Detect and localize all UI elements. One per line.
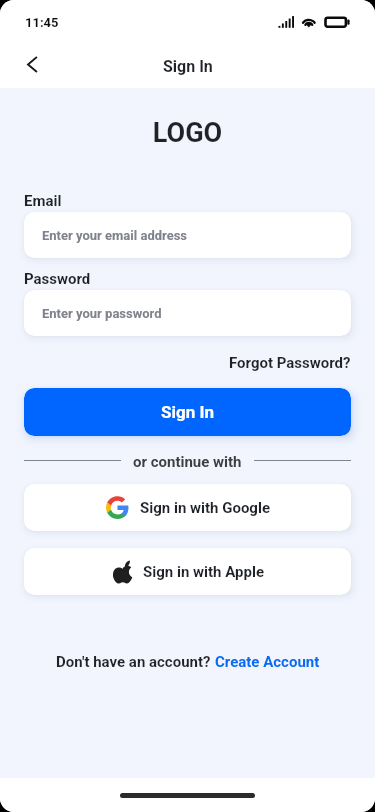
staticText: Email bbox=[24, 192, 62, 210]
staticText: Password bbox=[24, 270, 91, 288]
staticText: Enter your email address bbox=[42, 228, 188, 243]
button[interactable]: Back bbox=[12, 44, 52, 84]
button[interactable]: Sign In bbox=[24, 388, 351, 436]
button[interactable]: Enter your password bbox=[24, 290, 351, 336]
staticText: Enter your password bbox=[42, 306, 162, 321]
button[interactable]: Forgot Password? bbox=[229, 354, 351, 372]
staticText: 11:45 bbox=[25, 15, 59, 30]
staticText: Sign In bbox=[163, 57, 213, 76]
staticText: LOGO bbox=[0, 117, 375, 149]
button[interactable]: Enter your email address bbox=[24, 212, 351, 258]
staticText: Sign in with Google bbox=[140, 499, 271, 517]
staticText: Create Account bbox=[215, 653, 320, 671]
button[interactable]: Sign in with Apple bbox=[24, 548, 351, 595]
staticText: Don't have an account? bbox=[56, 653, 215, 671]
staticText: Forgot Password? bbox=[229, 354, 351, 372]
staticText: Sign in with Apple bbox=[143, 563, 264, 581]
staticText: Sign In bbox=[161, 402, 214, 422]
button[interactable]: Create Account bbox=[215, 653, 320, 671]
staticText: or continue with bbox=[133, 453, 242, 467]
button[interactable]: Sign in with Google bbox=[24, 484, 351, 531]
